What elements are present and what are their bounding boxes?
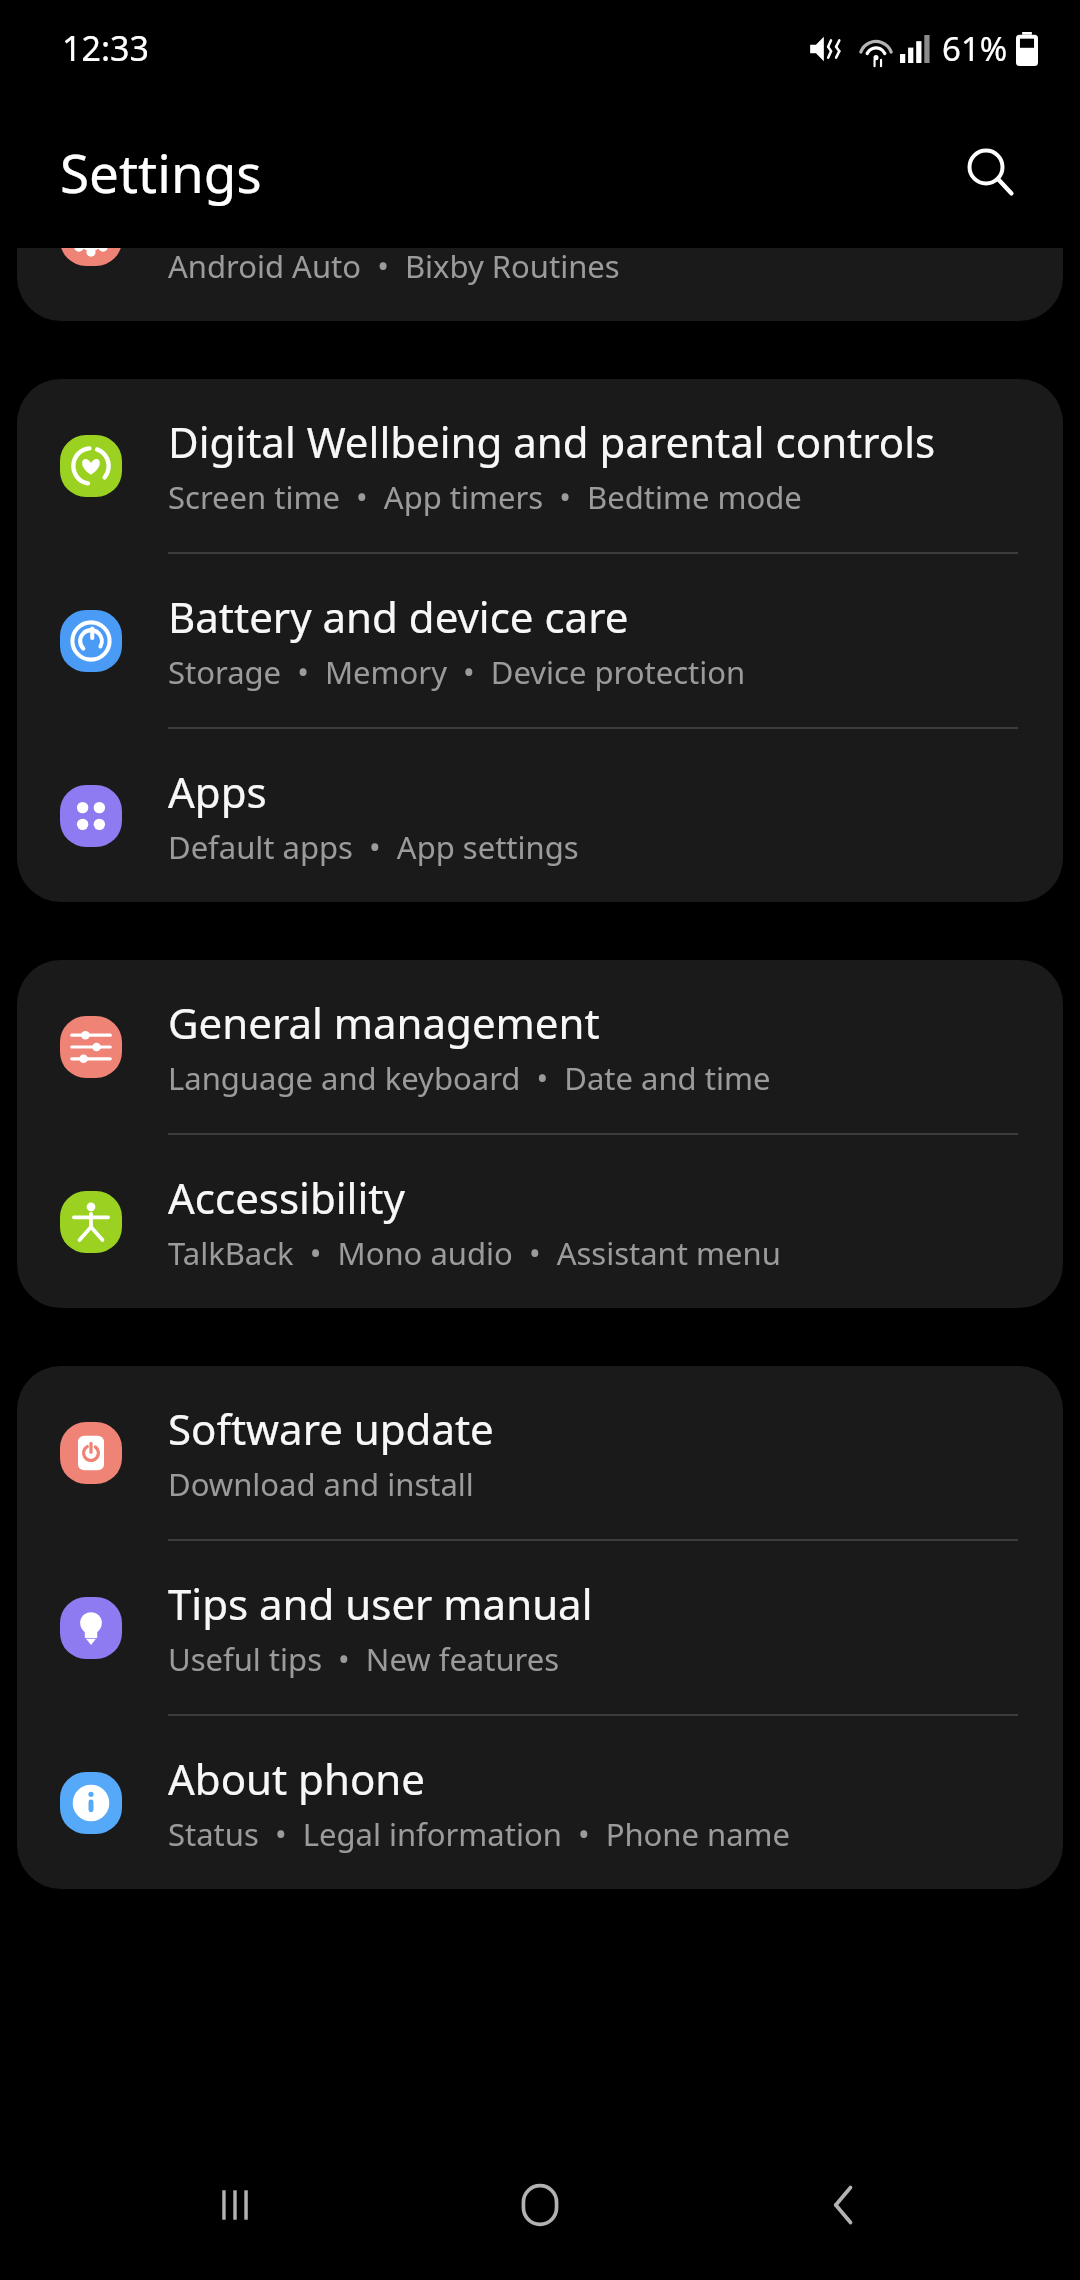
staticText: About phone: [168, 1750, 425, 1807]
button[interactable]: Home: [470, 2135, 610, 2275]
staticText: Storage • Memory • Device protection: [168, 651, 746, 693]
staticText: Android Auto • Bixby Routines: [168, 248, 620, 287]
staticText: 61%: [942, 26, 1008, 71]
staticText: Tips and user manual: [168, 1575, 593, 1632]
staticText: Battery and device care: [168, 588, 629, 645]
staticText: General management: [168, 994, 600, 1051]
staticText: Apps: [168, 763, 267, 820]
staticText: Useful tips • New features: [168, 1638, 560, 1680]
button[interactable]: Search: [942, 124, 1038, 220]
button[interactable]: Tips and user manual: [17, 1541, 1063, 1714]
staticText: 12:33: [62, 25, 149, 71]
staticText: Default apps • App settings: [168, 826, 579, 868]
staticText: Download and install: [168, 1463, 474, 1505]
button[interactable]: General management: [17, 960, 1063, 1133]
button[interactable]: Recents: [165, 2135, 305, 2275]
button[interactable]: Battery and device care: [17, 554, 1063, 727]
staticText: TalkBack • Mono audio • Assistant menu: [168, 1232, 781, 1274]
staticText: Language and keyboard • Date and time: [168, 1057, 771, 1099]
button[interactable]: Software update: [17, 1366, 1063, 1539]
staticText: Settings: [60, 136, 262, 208]
button[interactable]: Apps: [17, 729, 1063, 902]
staticText: Software update: [168, 1400, 494, 1457]
button[interactable]: Digital Wellbeing and parental controls: [17, 379, 1063, 552]
button[interactable]: About phone: [17, 1716, 1063, 1889]
staticText: Screen time • App timers • Bedtime mode: [168, 476, 802, 518]
staticText: Digital Wellbeing and parental controls: [168, 413, 936, 470]
staticText: Status • Legal information • Phone name: [168, 1813, 791, 1855]
button[interactable]: Advanced features: [17, 248, 1063, 321]
button[interactable]: Accessibility: [17, 1135, 1063, 1308]
staticText: Accessibility: [168, 1169, 405, 1226]
button[interactable]: Back: [775, 2135, 915, 2275]
